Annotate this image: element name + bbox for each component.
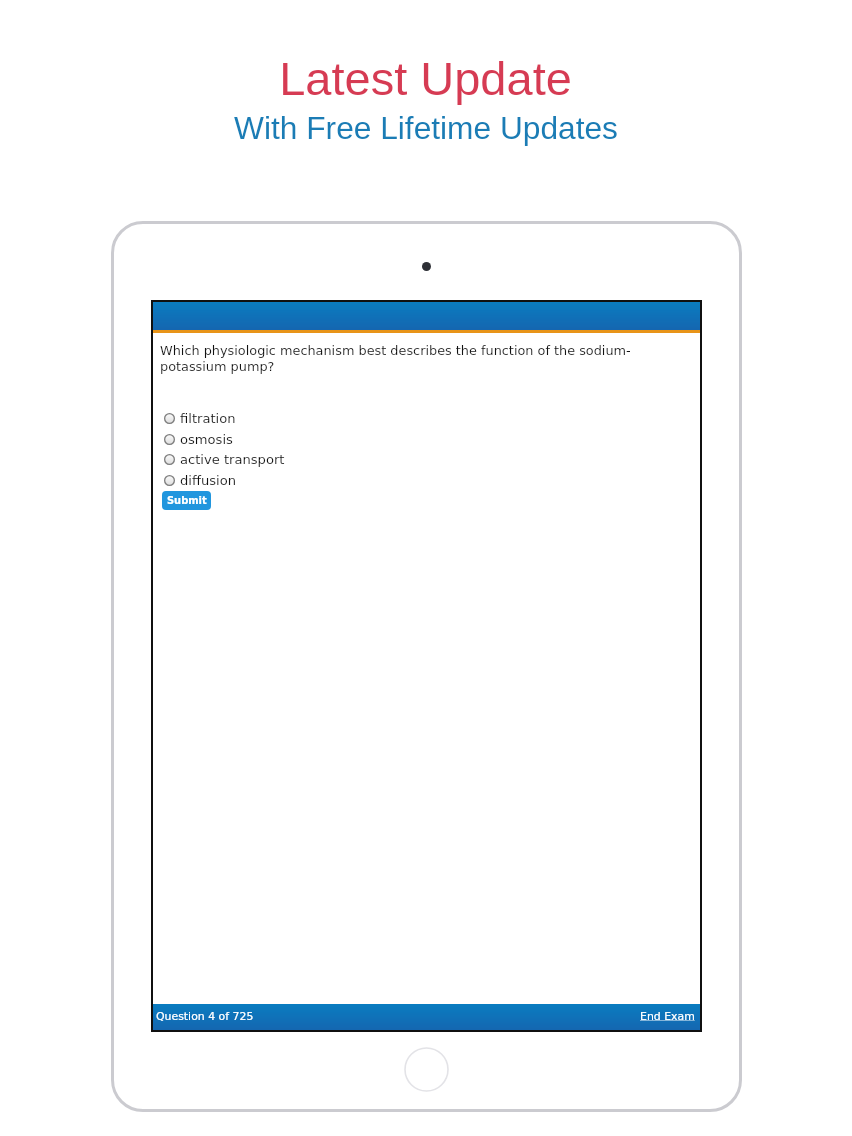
staticText: diffusion <box>180 473 237 488</box>
staticText: Question 4 of 725 <box>156 1010 254 1023</box>
staticText: Latest Update <box>279 52 572 105</box>
staticText: filtration <box>180 411 236 426</box>
button[interactable]: Submit <box>162 491 211 510</box>
staticText: active transport <box>180 452 285 467</box>
button[interactable]: diffusion <box>164 470 404 491</box>
button[interactable]: active transport <box>164 449 404 470</box>
button[interactable]: osmosis <box>164 429 404 450</box>
staticText: Submit <box>167 495 207 507</box>
staticText: With Free Lifetime Updates <box>234 110 618 145</box>
staticText: osmosis <box>180 432 233 447</box>
other: Home button <box>404 1047 449 1092</box>
other: Front camera <box>422 262 431 271</box>
staticText: Which physiologic mechanism best describ… <box>160 343 660 374</box>
staticText: End Exam <box>640 1010 695 1023</box>
button[interactable]: filtration <box>164 408 404 429</box>
button[interactable]: End Exam <box>636 1006 699 1027</box>
